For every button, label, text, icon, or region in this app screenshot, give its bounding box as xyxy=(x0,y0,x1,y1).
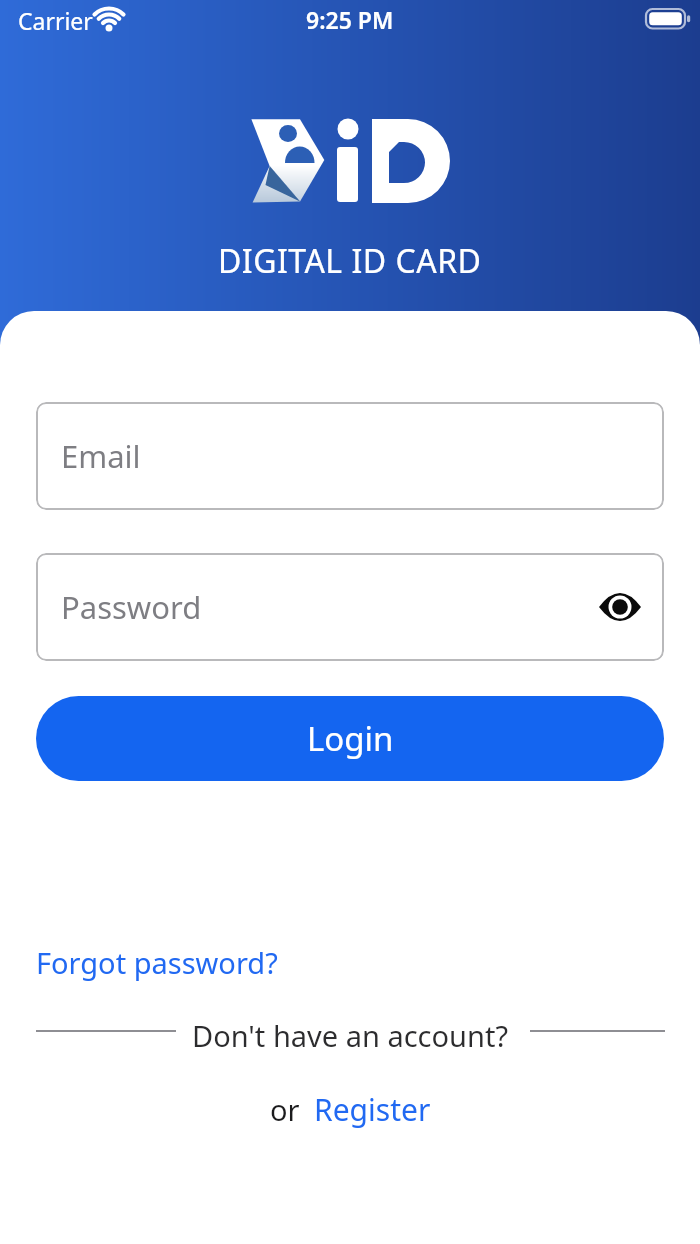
button[interactable] xyxy=(598,590,642,624)
button[interactable]: Forgot password? xyxy=(36,943,278,982)
staticText: 9:25 PM xyxy=(306,4,394,35)
button[interactable]: Email xyxy=(36,402,664,510)
staticText: Carrier xyxy=(18,5,93,36)
staticText: or xyxy=(270,1090,300,1129)
staticText: Register xyxy=(314,1089,431,1130)
staticText: Password xyxy=(61,586,202,628)
staticText: Don't have an account? xyxy=(192,1016,508,1055)
button[interactable]: Login xyxy=(36,696,664,781)
staticText: Forgot password? xyxy=(36,943,278,982)
button[interactable]: Register xyxy=(314,1089,431,1130)
staticText: Email xyxy=(61,435,141,477)
staticText: DIGITAL ID CARD xyxy=(218,239,482,283)
staticText: Login xyxy=(307,716,394,761)
button[interactable]: Password xyxy=(36,553,664,661)
